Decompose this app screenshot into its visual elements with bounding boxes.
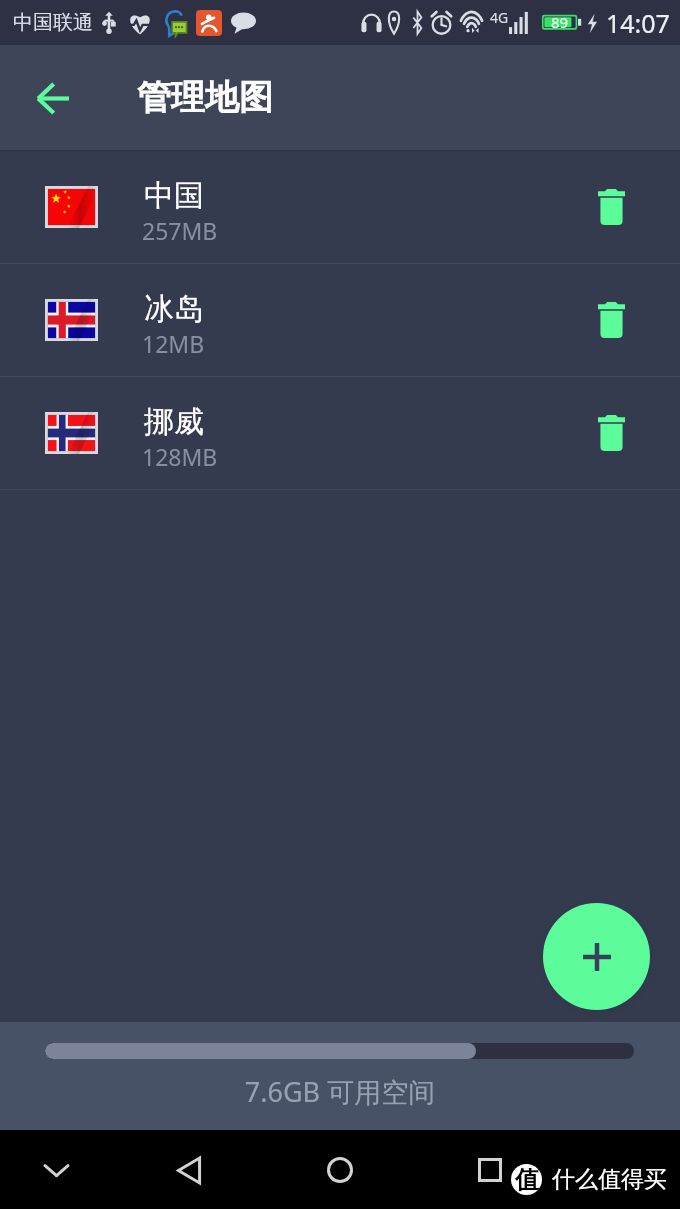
staticText: 128MB — [142, 441, 218, 472]
button[interactable]: Delete 中国 — [581, 177, 641, 237]
button[interactable]: Add map — [543, 903, 650, 1010]
staticText: 7.6GB 可用空间 — [0, 1073, 680, 1110]
staticText: 14:07 — [606, 6, 670, 40]
staticText: 4G — [490, 8, 509, 27]
button[interactable]: 挪威 — [0, 377, 680, 489]
staticText: 挪威 — [144, 403, 204, 441]
button[interactable]: Delete 冰岛 — [581, 290, 641, 350]
button[interactable]: Back — [20, 65, 86, 131]
button[interactable]: 冰岛 — [0, 264, 680, 376]
button[interactable]: 中国 — [0, 151, 680, 263]
button[interactable]: Delete 挪威 — [581, 403, 641, 463]
staticText: 中国 — [144, 177, 204, 215]
staticText: 中国联通 — [13, 10, 93, 35]
staticText: 什么值得买 — [552, 1165, 667, 1194]
button[interactable]: Home — [310, 1140, 370, 1200]
button[interactable]: Hide keyboard — [26, 1140, 86, 1200]
button[interactable]: Recents — [460, 1140, 520, 1200]
staticText: 89 — [551, 12, 569, 32]
staticText: 12MB — [142, 328, 205, 359]
staticText: 值 — [515, 1165, 539, 1195]
staticText: 冰岛 — [144, 290, 204, 328]
button[interactable]: Back — [159, 1140, 219, 1200]
staticText: 管理地图 — [137, 76, 273, 119]
staticText: 257MB — [142, 215, 218, 246]
